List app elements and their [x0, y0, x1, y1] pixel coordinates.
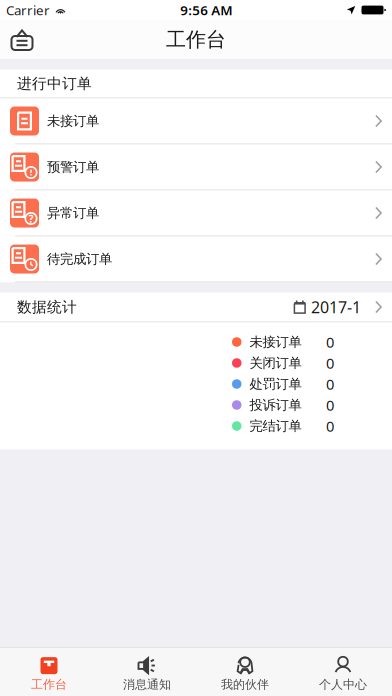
staticText: 进行中订单	[17, 74, 92, 92]
button[interactable]: 数据统计	[0, 292, 392, 322]
staticText: 投诉订单	[249, 397, 301, 413]
staticText: 0	[326, 332, 334, 352]
staticText: 0	[326, 374, 334, 394]
staticText: 个人中心	[319, 677, 367, 692]
staticText: 异常订单	[47, 205, 99, 221]
button[interactable]: 未接订单	[0, 98, 392, 144]
staticText: 数据统计	[17, 298, 77, 316]
button[interactable]: 消息通知	[98, 648, 196, 696]
button[interactable]: 工作台	[0, 648, 98, 696]
staticText: 0	[326, 416, 334, 436]
staticText: 工作台	[31, 677, 67, 692]
button[interactable]: 待完成订单	[0, 236, 392, 282]
staticText: Carrier	[6, 1, 50, 19]
staticText: 关闭订单	[249, 355, 301, 371]
staticText: 处罚订单	[249, 376, 301, 392]
staticText: 未接订单	[47, 113, 99, 129]
staticText: 0	[326, 395, 334, 415]
button[interactable]: Workbench	[8, 27, 36, 51]
button[interactable]: 我的伙伴	[196, 648, 294, 696]
staticText: 预警订单	[47, 159, 99, 175]
button[interactable]: 个人中心	[294, 648, 392, 696]
staticText: 未接订单	[249, 334, 301, 350]
staticText: 待完成订单	[47, 251, 112, 267]
staticText: 我的伙伴	[221, 677, 269, 692]
staticText: 消息通知	[123, 677, 171, 692]
staticText: 完结订单	[249, 418, 301, 434]
button[interactable]: ?	[0, 190, 392, 236]
staticText: ?	[28, 211, 33, 226]
staticText: 9:56 AM	[180, 1, 232, 19]
staticText: 2017-1	[311, 296, 361, 318]
staticText: 0	[326, 353, 334, 373]
button[interactable]: 预警订单	[0, 144, 392, 190]
staticText: 工作台	[166, 27, 226, 52]
